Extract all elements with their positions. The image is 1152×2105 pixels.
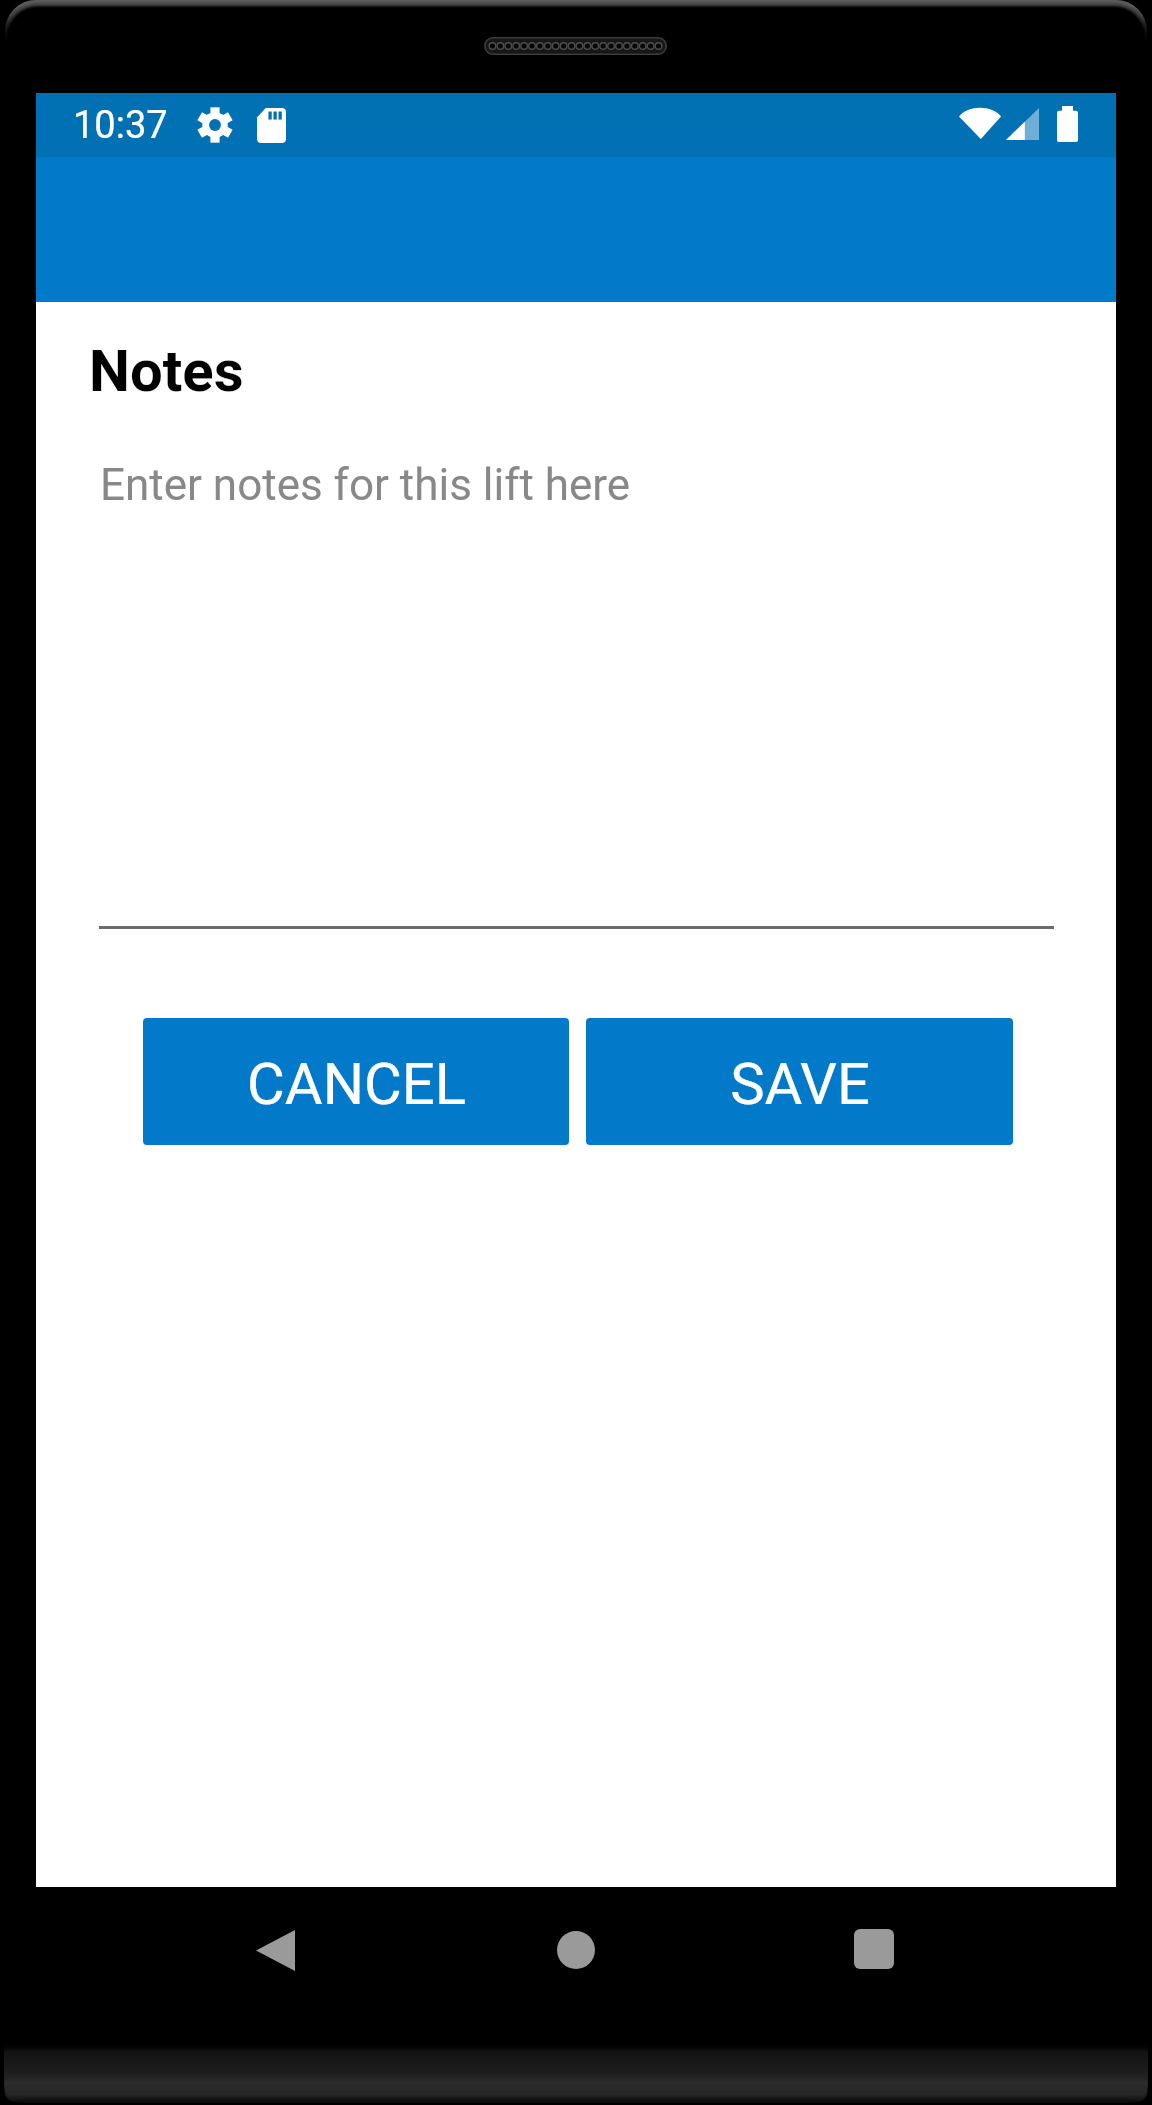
button[interactable]: CANCEL [143,1018,569,1145]
staticText: Notes [89,337,244,405]
staticText: CANCEL [247,1050,466,1118]
button[interactable]: SAVE [586,1018,1013,1145]
button[interactable]: Home [504,1887,648,2031]
staticText: Enter notes for this lift here [100,459,631,511]
button[interactable]: Enter notes for this lift here [99,405,1054,929]
button[interactable]: Recent apps [802,1887,946,2031]
button[interactable]: Back [203,1887,347,2031]
staticText: 10:37 [73,103,168,148]
staticText: SAVE [730,1050,870,1118]
